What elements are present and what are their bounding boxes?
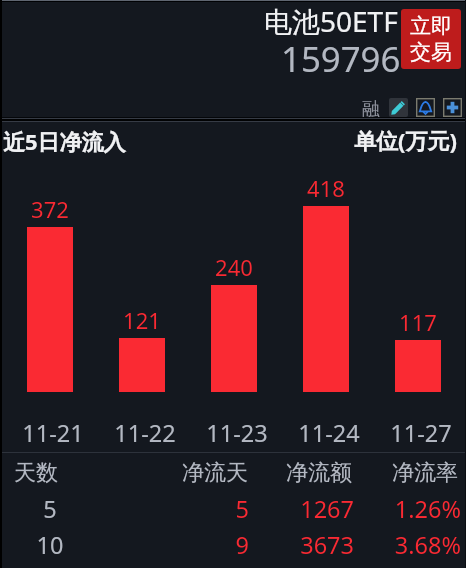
button[interactable] [0,488,466,524]
staticText: 单位(万元) [354,125,457,155]
staticText: 天数 [14,459,58,487]
staticText: 11-24 [284,417,374,449]
staticText: 电池50ETF [264,2,398,40]
button[interactable]: 近5日净流入 [0,123,466,163]
staticText: 立即 交易 [410,13,452,65]
button[interactable]: 立即 交易 [401,9,461,69]
staticText: 3.68% [321,529,461,561]
staticText: 10 [0,529,100,561]
staticText: 净流率 [318,459,458,487]
staticText: 240 [194,252,274,282]
button[interactable]: Edit [389,98,408,117]
staticText: 11-23 [192,417,282,449]
staticText: 159796 [281,35,401,82]
button[interactable]: Add [443,98,462,117]
staticText: 117 [378,307,458,337]
staticText: 净流天 [108,459,248,487]
staticText: 1267 [214,493,354,525]
staticText: 9 [109,529,249,561]
staticText: 5 [0,493,100,525]
staticText: 净流额 [212,459,352,487]
staticText: 11-27 [376,417,466,449]
staticText: 3673 [214,529,354,561]
staticText: 372 [10,194,90,224]
button[interactable]: Alerts [416,98,435,117]
staticText: 11-22 [100,417,190,449]
staticText: 近5日净流入 [3,126,126,156]
staticText: 融 [362,98,380,121]
staticText: 11-21 [8,417,98,449]
button[interactable] [0,524,466,560]
staticText: 1.26% [321,493,461,525]
staticText: 121 [102,305,182,335]
staticText: 5 [109,493,249,525]
staticText: 418 [286,173,366,203]
button[interactable] [0,453,466,488]
